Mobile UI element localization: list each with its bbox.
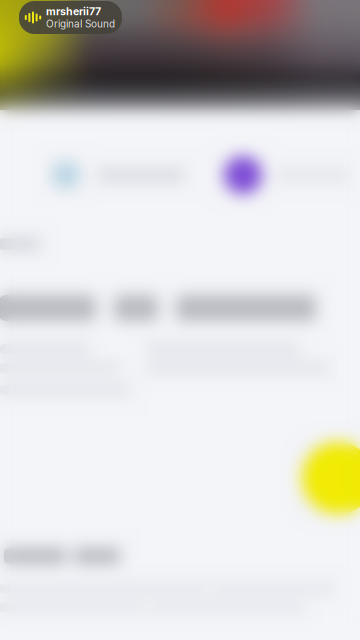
button[interactable] bbox=[224, 156, 348, 194]
staticText: Original Sound bbox=[46, 18, 115, 30]
button[interactable] bbox=[52, 161, 184, 189]
staticText: mrsherii77 bbox=[46, 5, 101, 18]
button[interactable]: mrsherii77 bbox=[19, 1, 122, 34]
